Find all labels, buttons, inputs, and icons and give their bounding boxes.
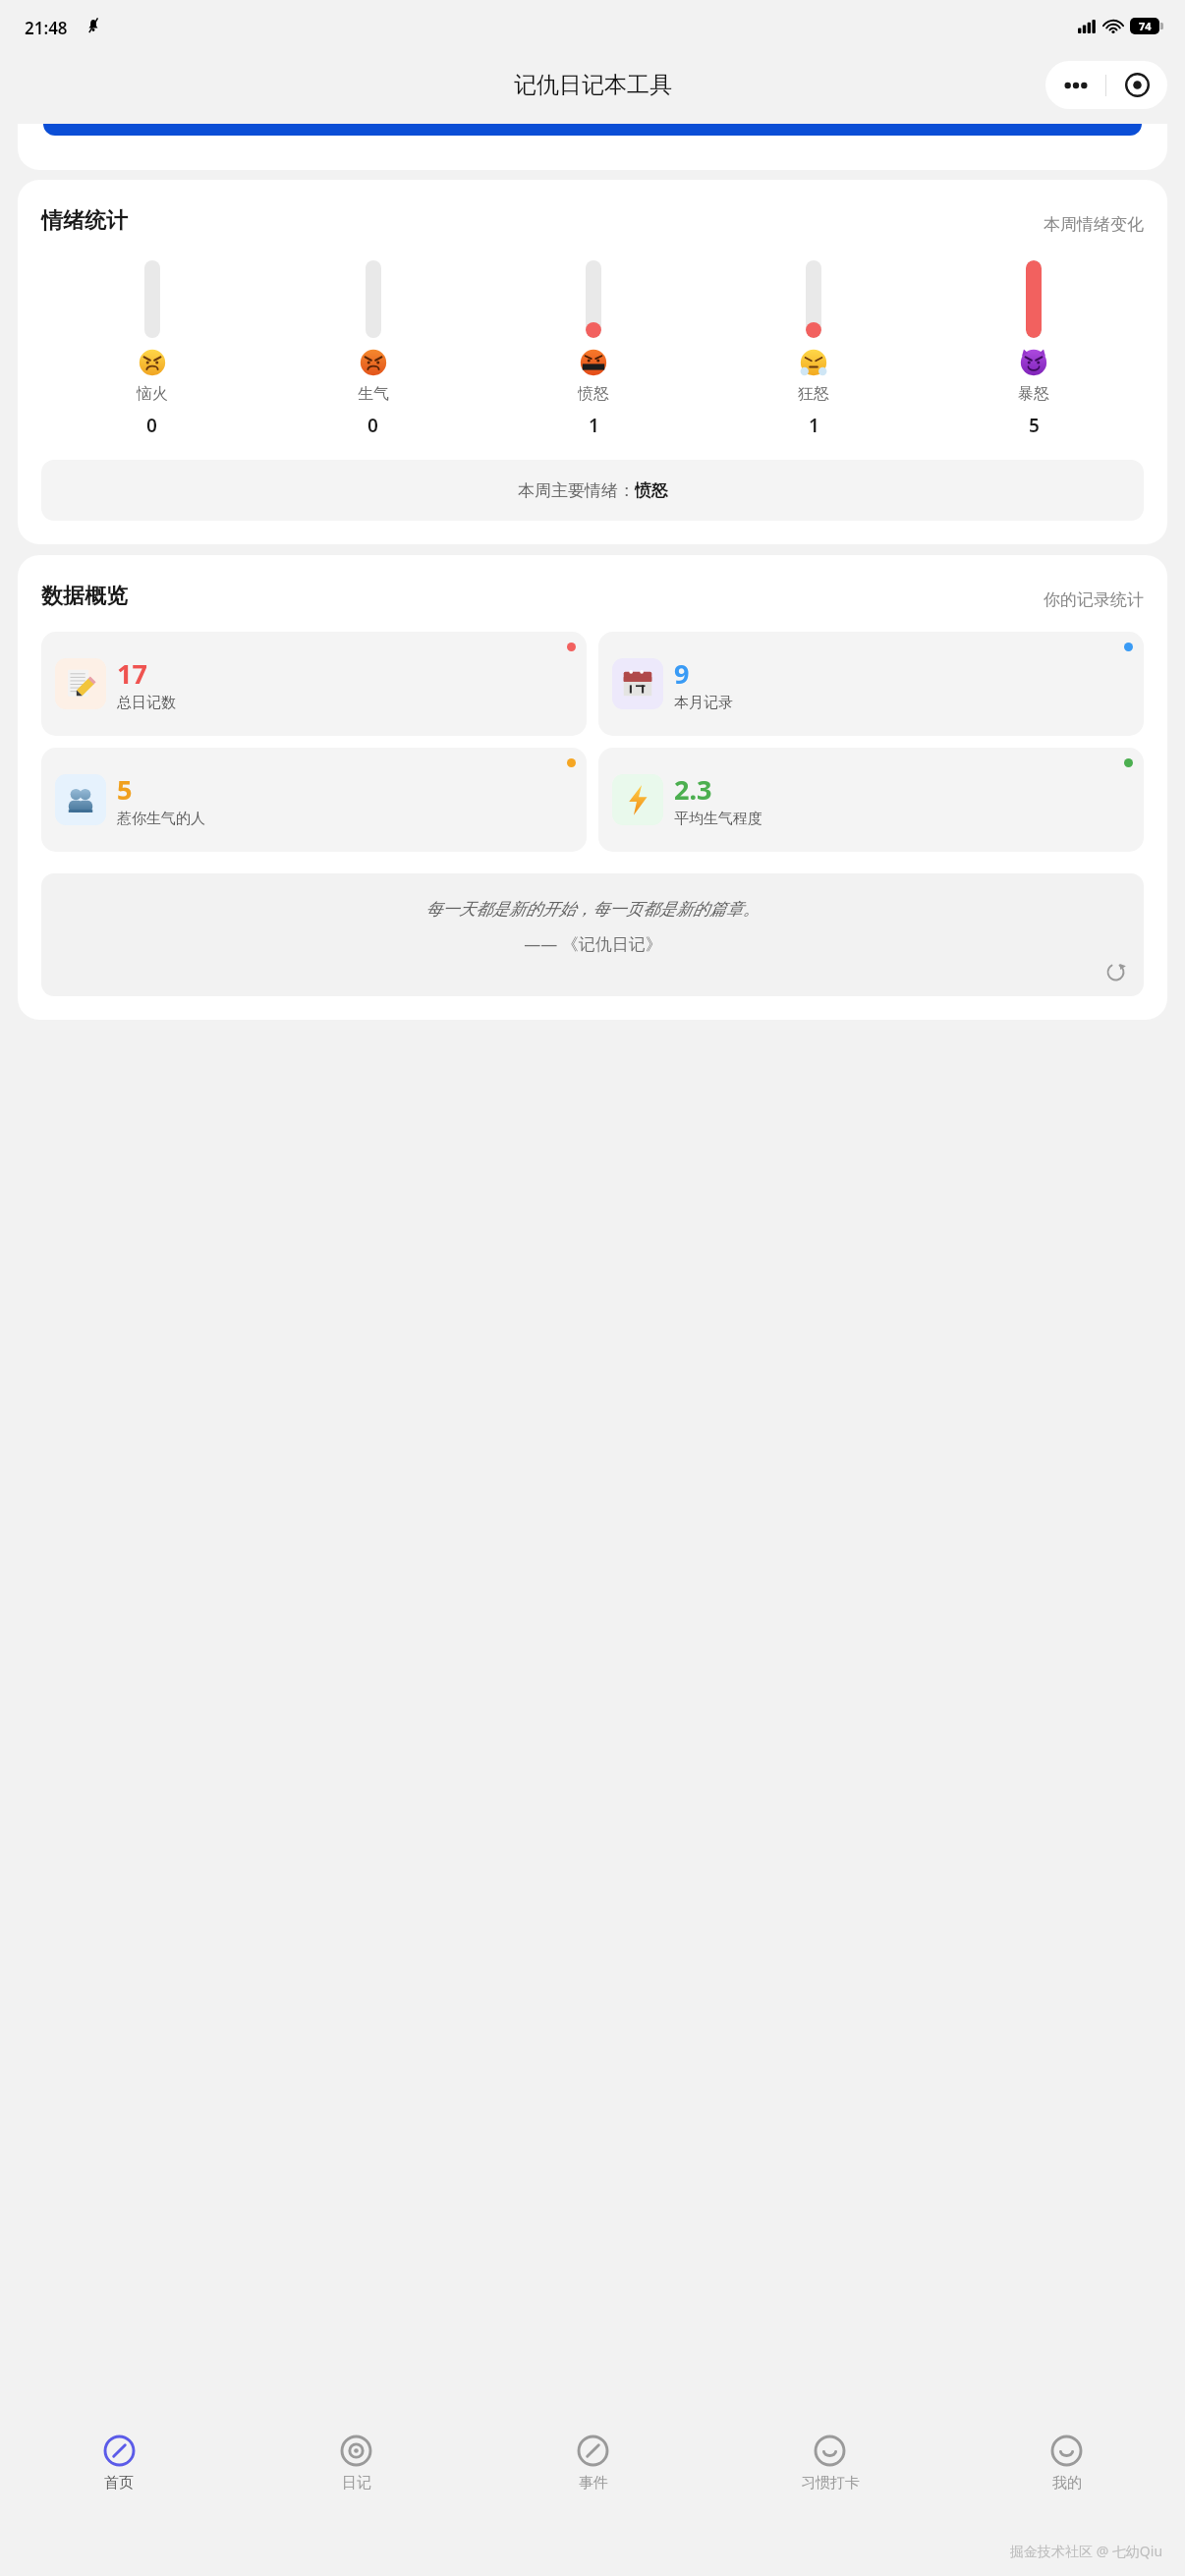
button[interactable]: 日记 xyxy=(238,2419,475,2525)
staticText: 2.3 xyxy=(674,771,712,808)
button[interactable]: Refresh quote xyxy=(1102,959,1128,984)
staticText: 习惯打卡 xyxy=(801,2474,860,2492)
button[interactable] xyxy=(43,124,1142,136)
staticText: 狂怒 xyxy=(798,384,829,404)
staticText: 愤怒 xyxy=(635,480,668,501)
button[interactable]: 9 xyxy=(598,632,1144,736)
button[interactable]: 狂怒 xyxy=(704,260,924,438)
staticText: 生气 xyxy=(358,384,389,404)
button[interactable]: 暴怒 xyxy=(924,260,1144,438)
button[interactable]: 首页 xyxy=(0,2419,238,2525)
staticText: 0 xyxy=(367,413,378,438)
staticText: 21:48 xyxy=(25,17,68,39)
staticText: 1 xyxy=(589,413,599,438)
staticText: —— 《记仇日记》 xyxy=(524,932,662,955)
button[interactable]: 习惯打卡 xyxy=(711,2419,948,2525)
staticText: 日记 xyxy=(342,2474,371,2492)
staticText: 记仇日记本工具 xyxy=(514,71,672,99)
staticText: 0 xyxy=(146,413,157,438)
staticText: 平均生气程度 xyxy=(674,810,762,828)
staticText: 总日记数 xyxy=(117,694,176,712)
staticText: 5 xyxy=(117,771,133,808)
staticText: 9 xyxy=(674,655,690,692)
staticText: 掘金技术社区 @ 七幼Qiu xyxy=(1010,2542,1163,2560)
button[interactable]: 2.3 xyxy=(598,748,1144,852)
staticText: 数据概览 xyxy=(41,583,128,610)
button[interactable]: 本周主要情绪： xyxy=(41,460,1144,521)
staticText: 每一天都是新的开始，每一页都是新的篇章。 xyxy=(425,899,760,920)
button[interactable]: 愤怒 xyxy=(483,260,704,438)
staticText: 17 xyxy=(117,655,147,692)
staticText: 5 xyxy=(1029,413,1040,438)
staticText: 1 xyxy=(809,413,819,438)
button[interactable]: Close xyxy=(1106,61,1167,109)
staticText: 你的记录统计 xyxy=(1044,589,1144,610)
staticText: 事件 xyxy=(579,2474,608,2492)
button[interactable]: 恼火 xyxy=(41,260,262,438)
button[interactable]: More xyxy=(1045,61,1105,109)
button[interactable]: 5 xyxy=(41,748,587,852)
staticText: 74 xyxy=(1139,19,1152,33)
button[interactable]: 事件 xyxy=(475,2419,711,2525)
staticText: 惹你生气的人 xyxy=(117,810,205,828)
staticText: 本月记录 xyxy=(674,694,733,712)
staticText: 恼火 xyxy=(137,384,168,404)
staticText: 本周情绪变化 xyxy=(1044,214,1144,235)
staticText: 情绪统计 xyxy=(41,207,128,235)
staticText: 愤怒 xyxy=(578,384,609,404)
staticText: 首页 xyxy=(104,2474,134,2492)
staticText: 我的 xyxy=(1052,2474,1082,2492)
staticText: 本周主要情绪： xyxy=(518,480,635,501)
button[interactable]: 17 xyxy=(41,632,587,736)
staticText: 暴怒 xyxy=(1018,384,1049,404)
button[interactable]: 生气 xyxy=(262,260,483,438)
button[interactable]: 我的 xyxy=(948,2419,1185,2525)
button[interactable]: 每一天都是新的开始，每一页都是新的篇章。 xyxy=(41,873,1144,996)
